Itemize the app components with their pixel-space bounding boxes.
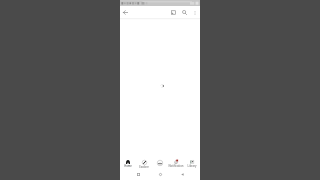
button[interactable]: Explore	[136, 153, 152, 168]
button[interactable]: More options	[190, 8, 199, 17]
button[interactable]: Back	[178, 170, 186, 178]
button[interactable]: Home	[120, 153, 136, 168]
button[interactable]: Back	[120, 7, 131, 18]
button[interactable]: Add	[152, 153, 168, 168]
button[interactable]: Cast	[168, 7, 179, 18]
staticText: Home	[124, 164, 132, 168]
button[interactable]: Recent apps	[134, 170, 142, 178]
staticText: Explore	[139, 165, 149, 168]
staticText: Notifications	[168, 164, 184, 168]
button[interactable]: Search	[179, 7, 190, 18]
staticText: Library	[187, 164, 197, 168]
button[interactable]: Library	[184, 153, 200, 168]
button[interactable]: Home	[156, 170, 164, 178]
button[interactable]: Notifications	[168, 153, 184, 168]
